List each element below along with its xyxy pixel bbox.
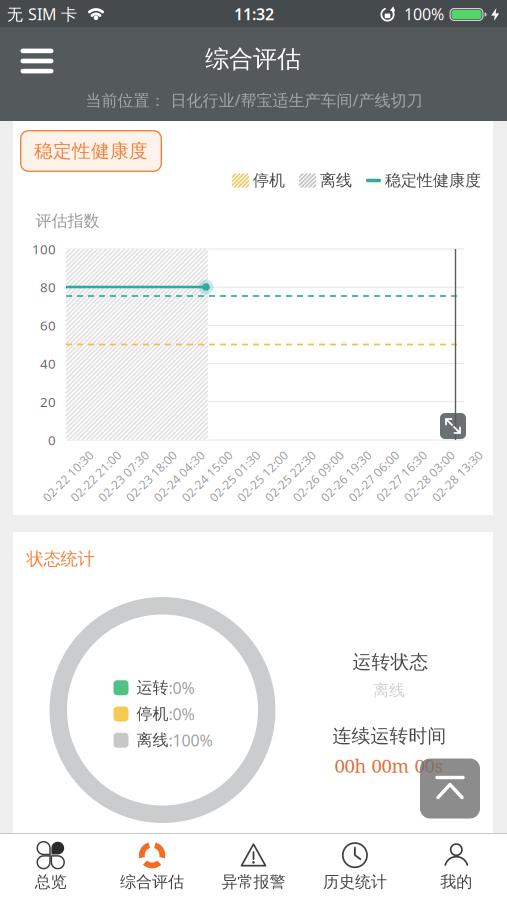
staticText: 历史统计: [323, 872, 387, 892]
button[interactable]: Back to top: [420, 758, 480, 818]
staticText: 02-28 03:00: [396, 468, 462, 484]
button[interactable]: 我的: [406, 834, 507, 898]
staticText: 无 SIM 卡: [7, 3, 77, 25]
staticText: 稳定性健康度: [34, 139, 148, 162]
button[interactable]: Menu: [11, 38, 63, 84]
staticText: 运转: [136, 678, 168, 698]
button[interactable]: 总览: [0, 834, 101, 898]
button[interactable]: 稳定性健康度: [20, 130, 162, 172]
staticText: :100%: [168, 730, 212, 751]
staticText: 02-27 06:00: [341, 468, 407, 484]
staticText: 当前位置： 日化行业/帮宝适生产车间/产线切刀: [85, 89, 422, 111]
staticText: 停机: [253, 171, 285, 190]
staticText: 40: [40, 355, 56, 372]
staticText: 异常报警: [221, 872, 285, 892]
staticText: 离线: [373, 681, 405, 700]
staticText: 02-25 12:00: [230, 468, 296, 484]
staticText: 离线: [136, 730, 168, 750]
staticText: 停机: [136, 704, 168, 724]
staticText: 02-24 04:30: [146, 468, 212, 484]
staticText: 综合评估: [120, 872, 184, 892]
staticText: 总览: [35, 872, 67, 892]
staticText: 稳定性健康度: [385, 171, 481, 190]
staticText: 运转状态: [352, 650, 428, 673]
staticText: 20: [40, 393, 56, 411]
staticText: 02-26 19:30: [313, 468, 379, 484]
staticText: 02-27 16:30: [369, 468, 435, 484]
staticText: 02-22 10:30: [35, 468, 101, 484]
staticText: 02-23 07:30: [91, 468, 157, 484]
staticText: 02-23 18:00: [118, 468, 184, 484]
staticText: 0: [48, 431, 56, 449]
staticText: 综合评估: [205, 44, 301, 74]
staticText: 100: [32, 240, 56, 258]
staticText: 80: [40, 278, 56, 296]
button[interactable]: 综合评估: [101, 834, 203, 898]
staticText: 02-28 13:30: [424, 468, 490, 484]
staticText: 状态统计: [26, 548, 94, 570]
staticText: 我的: [440, 872, 472, 892]
staticText: 60: [40, 316, 56, 334]
staticText: 02-24 15:00: [174, 468, 240, 484]
staticText: 02-25 22:30: [257, 468, 323, 484]
staticText: 离线: [320, 171, 352, 190]
staticText: :0%: [168, 703, 194, 725]
staticText: 00h 00m 00s: [334, 753, 442, 778]
staticText: 02-26 09:00: [285, 468, 351, 484]
staticText: 02-22 21:00: [63, 468, 129, 484]
staticText: 连续运转时间: [332, 724, 446, 747]
staticText: 100%: [404, 3, 444, 25]
button[interactable]: Expand chart: [440, 413, 466, 439]
button[interactable]: 历史统计: [304, 834, 406, 898]
staticText: 02-25 01:30: [202, 468, 268, 484]
staticText: :0%: [168, 677, 194, 698]
button[interactable]: 异常报警: [203, 834, 304, 898]
staticText: 11:32: [234, 3, 274, 25]
staticText: 评估指数: [35, 211, 99, 231]
